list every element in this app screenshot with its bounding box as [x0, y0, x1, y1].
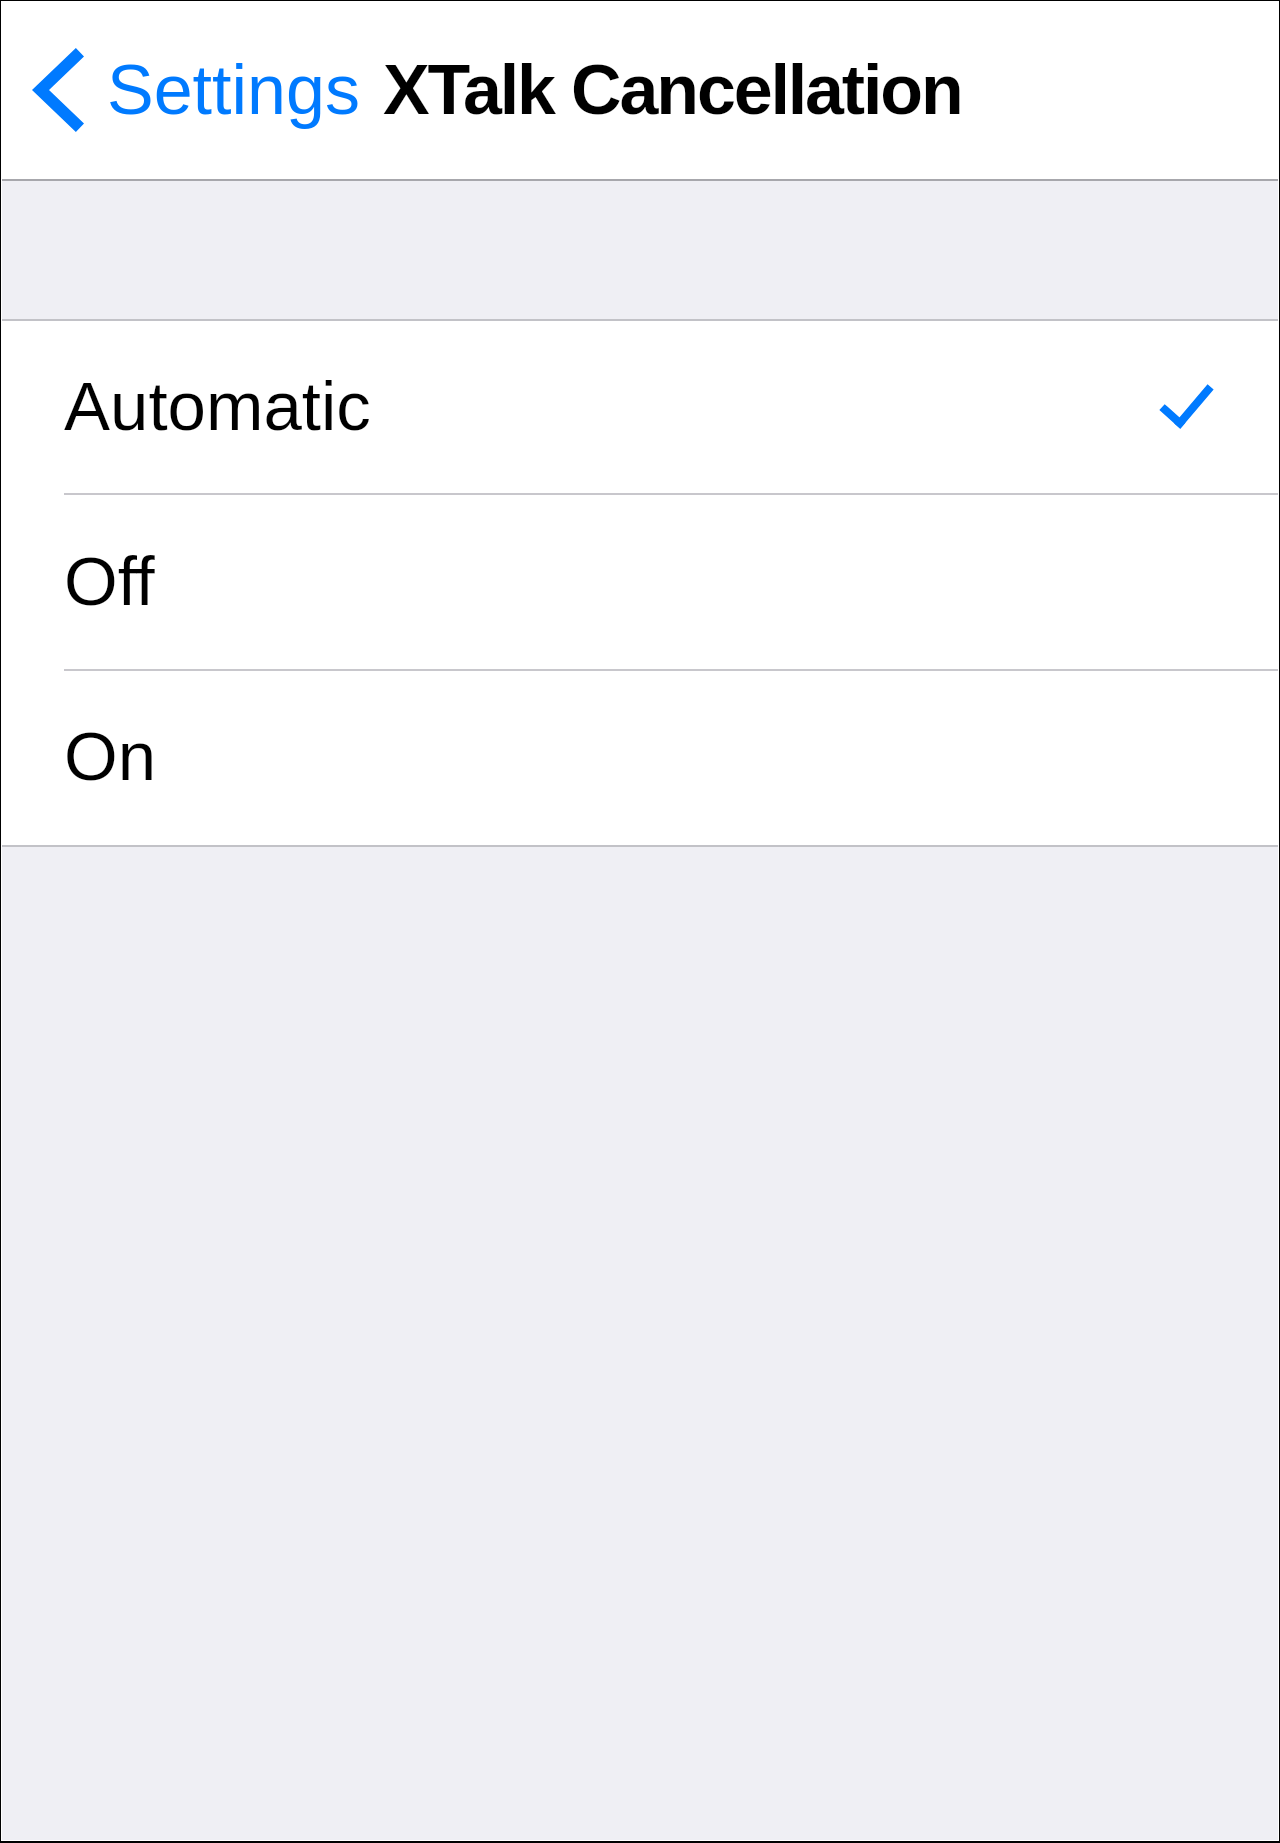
other: Selected [1161, 386, 1212, 427]
staticText: Settings [107, 51, 360, 129]
button[interactable]: On [2, 671, 1278, 845]
button[interactable]: Off [2, 495, 1278, 671]
staticText: On [64, 718, 157, 795]
staticText: Automatic [64, 368, 371, 445]
button[interactable]: Back to Settings [2, 18, 370, 162]
button[interactable]: Automatic [2, 321, 1278, 495]
other: Back to Settings [32, 48, 84, 132]
staticText: XTalk Cancellation [383, 51, 962, 129]
staticText: Off [64, 543, 155, 620]
